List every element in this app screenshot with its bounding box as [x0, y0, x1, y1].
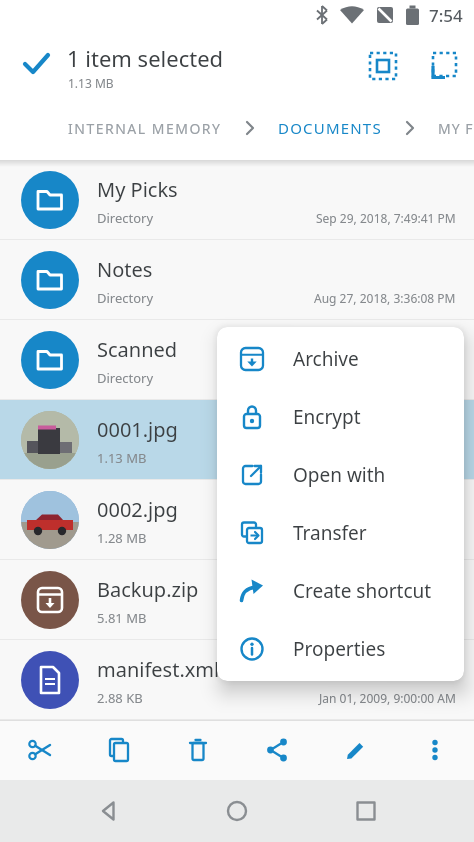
staticText: Directory	[97, 369, 154, 387]
staticText: Jan 01, 2009, 9:00:00 AM	[319, 690, 456, 706]
staticText: Transfer	[293, 520, 367, 546]
button[interactable]: Scanned	[0, 320, 474, 400]
button[interactable]: Create shortcut	[217, 562, 464, 620]
button[interactable]	[85, 784, 133, 838]
button[interactable]	[316, 720, 395, 780]
staticText: 1.28 MB	[97, 529, 147, 547]
staticText: Notes	[97, 256, 153, 283]
staticText: INTERNAL MEMORY	[68, 119, 222, 138]
button[interactable]	[395, 720, 474, 780]
button[interactable]: Open with	[217, 446, 464, 504]
button[interactable]: Encrypt	[217, 388, 464, 446]
staticText: 0001.jpg	[97, 416, 178, 443]
staticText: 1.13 MB	[97, 449, 147, 467]
staticText: Directory	[97, 289, 154, 307]
staticText: Directory	[97, 209, 154, 227]
button[interactable]	[342, 784, 390, 838]
button[interactable]: Properties	[217, 620, 464, 678]
button[interactable]: Transfer	[217, 504, 464, 562]
button[interactable]: 0001.jpg	[0, 400, 474, 480]
staticText: Create shortcut	[293, 578, 432, 604]
button[interactable]	[79, 720, 158, 780]
button[interactable]	[0, 720, 79, 780]
staticText: Backup.zip	[97, 576, 199, 603]
button[interactable]: 0002.jpg	[0, 480, 474, 560]
staticText: 2.88 KB	[97, 689, 143, 707]
button[interactable]	[158, 720, 237, 780]
staticText: Properties	[293, 636, 386, 662]
staticText: 5.81 MB	[97, 609, 147, 627]
staticText: DOCUMENTS	[278, 118, 382, 138]
staticText: 7:54	[429, 4, 463, 27]
staticText: Aug 27, 2018, 3:36:08 PM	[314, 290, 456, 306]
button[interactable]: INTERNAL MEMORY	[68, 119, 222, 138]
button[interactable]	[237, 720, 316, 780]
staticText: manifest.xml	[97, 656, 220, 683]
staticText: MY FILES	[438, 119, 474, 138]
button[interactable]: manifest.xml	[0, 640, 474, 720]
staticText: Open with	[293, 462, 386, 488]
staticText: 1.13 MB	[68, 75, 114, 91]
staticText: Scanned	[97, 336, 178, 363]
button[interactable]: My Picks	[0, 160, 474, 240]
button[interactable]: DOCUMENTS	[278, 118, 382, 138]
button[interactable]: MY FILES	[438, 119, 474, 138]
staticText: Encrypt	[293, 404, 361, 430]
button[interactable]: Notes	[0, 240, 474, 320]
button[interactable]: Archive	[217, 330, 464, 388]
button[interactable]	[213, 784, 261, 838]
staticText: My Picks	[97, 176, 178, 203]
staticText: 1 item selected	[67, 43, 224, 73]
staticText: 0002.jpg	[97, 496, 178, 523]
staticText: Sep 29, 2018, 7:49:41 PM	[316, 210, 456, 226]
staticText: Archive	[293, 346, 359, 372]
button[interactable]: Backup.zip	[0, 560, 474, 640]
